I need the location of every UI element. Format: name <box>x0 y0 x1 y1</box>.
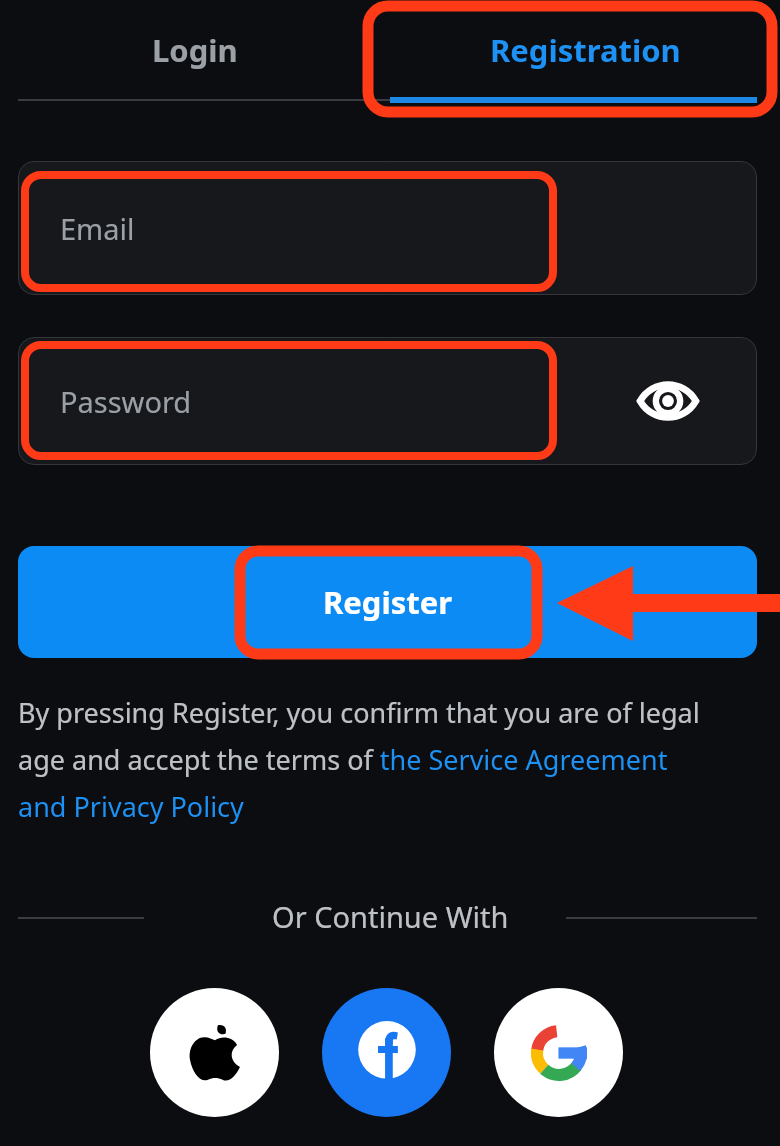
staticText: Or Continue With <box>272 897 509 936</box>
staticText: Register <box>323 581 453 623</box>
button[interactable]: Email <box>18 161 757 295</box>
staticText: Email <box>60 209 135 248</box>
button[interactable]: Login <box>0 0 390 100</box>
staticText: Login <box>152 29 238 71</box>
button[interactable]: Continue with Facebook <box>322 988 451 1117</box>
button[interactable]: Continue with Apple <box>150 988 279 1117</box>
button[interactable]: Show password <box>628 361 708 441</box>
button[interactable]: Registration <box>390 0 780 100</box>
staticText: Registration <box>490 29 681 71</box>
staticText: By pressing Register, you confirm that y… <box>18 694 708 825</box>
button[interactable]: Continue with Google <box>494 988 623 1117</box>
staticText: Password <box>60 382 192 421</box>
button[interactable]: Register <box>18 546 757 658</box>
button[interactable]: Password <box>18 337 757 465</box>
